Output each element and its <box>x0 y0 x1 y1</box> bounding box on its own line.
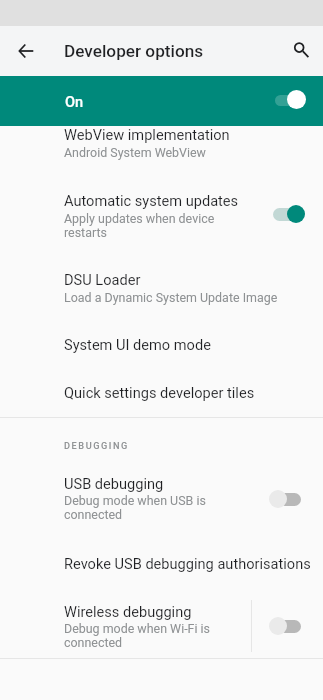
button[interactable] <box>0 328 323 373</box>
staticText: DSU Loader <box>64 271 141 288</box>
staticText: Quick settings developer tiles <box>64 384 255 401</box>
staticText: DEBUGGING <box>64 440 129 451</box>
button[interactable]: Switch off <box>268 615 306 637</box>
button[interactable] <box>0 188 323 268</box>
button[interactable] <box>0 466 323 528</box>
button[interactable]: Switch on <box>268 203 306 225</box>
staticText: Wireless debugging <box>64 603 192 620</box>
button[interactable]: Search <box>289 38 313 62</box>
staticText: On <box>65 93 84 110</box>
button[interactable] <box>0 126 323 188</box>
staticText: Developer options <box>64 41 204 61</box>
button[interactable]: Switch off <box>268 488 306 510</box>
button[interactable] <box>0 268 323 328</box>
button[interactable] <box>0 592 323 658</box>
staticText: Debug mode when Wi-Fi is connected <box>64 622 227 650</box>
button[interactable] <box>0 373 323 417</box>
staticText: Android System WebView <box>64 146 206 160</box>
staticText: Automatic system updates <box>64 192 239 209</box>
staticText: Revoke USB debugging authorisations <box>64 555 311 572</box>
staticText: Apply updates when device restarts <box>64 212 229 240</box>
staticText: WebView implementation <box>64 126 230 143</box>
staticText: System UI demo mode <box>64 336 211 353</box>
button[interactable] <box>0 546 323 590</box>
button[interactable]: Switch on <box>270 89 306 111</box>
button[interactable]: Navigate up <box>14 39 38 63</box>
staticText: Load a Dynamic System Update Image <box>64 291 278 305</box>
button[interactable] <box>0 76 323 126</box>
staticText: Debug mode when USB is connected <box>64 494 224 522</box>
staticText: USB debugging <box>64 475 164 492</box>
